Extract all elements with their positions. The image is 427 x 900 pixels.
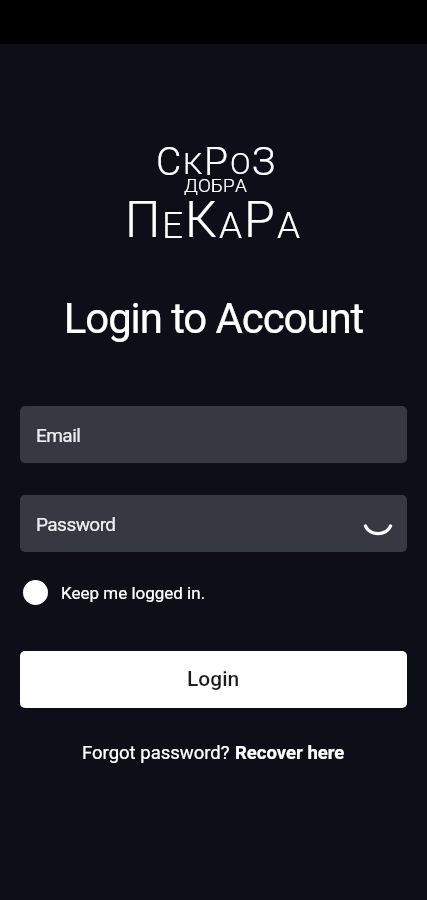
staticText: Email bbox=[36, 424, 81, 446]
staticText: Д bbox=[184, 174, 198, 196]
staticText: Р bbox=[244, 191, 277, 250]
staticText: А bbox=[219, 204, 244, 247]
staticText: П bbox=[125, 191, 162, 250]
button[interactable]: Recover here bbox=[235, 742, 345, 764]
staticText: Keep me logged in. bbox=[61, 583, 206, 603]
staticText: О bbox=[230, 146, 252, 182]
button[interactable]: Keep me logged in. bbox=[23, 580, 206, 605]
staticText: Р bbox=[223, 174, 235, 196]
staticText: Б bbox=[211, 174, 223, 196]
staticText: С bbox=[156, 139, 183, 185]
button[interactable]: Email bbox=[20, 406, 407, 463]
staticText: Password bbox=[36, 513, 116, 535]
staticText: Е bbox=[162, 204, 185, 247]
staticText: Login to Account bbox=[0, 294, 427, 343]
staticText: З bbox=[252, 139, 277, 185]
staticText: Login bbox=[187, 667, 240, 692]
staticText: К bbox=[185, 191, 219, 250]
button[interactable]: Password bbox=[20, 495, 407, 552]
button[interactable]: Login bbox=[20, 651, 407, 708]
button[interactable]: Show password bbox=[361, 507, 395, 541]
staticText: К bbox=[183, 146, 204, 182]
staticText: О bbox=[198, 174, 211, 196]
staticText: А bbox=[277, 204, 302, 247]
staticText: Р bbox=[204, 139, 230, 185]
staticText: А bbox=[235, 174, 247, 196]
staticText: Forgot password? bbox=[82, 742, 235, 764]
